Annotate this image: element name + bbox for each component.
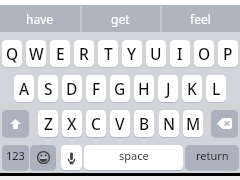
staticText: J (166, 78, 171, 99)
staticText: R (79, 43, 89, 64)
staticText: P (223, 43, 233, 64)
button[interactable]: S (38, 75, 58, 102)
button[interactable]: Q (2, 40, 22, 67)
staticText: Q (6, 43, 19, 64)
button[interactable]: M (183, 110, 203, 137)
button[interactable]: E (50, 40, 70, 67)
staticText: A (19, 78, 30, 99)
staticText: C (91, 113, 101, 134)
staticText: H (138, 78, 150, 99)
button[interactable]: Emoji (30, 145, 56, 170)
button[interactable]: D (62, 75, 82, 102)
button[interactable]: feel (160, 5, 240, 32)
staticText: G (114, 78, 126, 99)
button[interactable]: N (159, 110, 179, 137)
button[interactable]: have (0, 5, 80, 32)
button[interactable]: Y (122, 40, 142, 67)
button[interactable]: Shift (2, 110, 29, 137)
button[interactable]: C (86, 110, 106, 137)
button[interactable]: Dictate (61, 145, 82, 170)
staticText: return (196, 148, 229, 163)
button[interactable]: J (158, 75, 178, 102)
button[interactable]: T (98, 40, 118, 67)
staticText: Z (44, 113, 53, 134)
staticText: I (177, 43, 183, 64)
button[interactable]: F (86, 75, 106, 102)
button[interactable]: U (146, 40, 166, 67)
staticText: O (198, 43, 211, 64)
staticText: M (186, 113, 201, 134)
button[interactable]: V (110, 110, 130, 137)
button[interactable]: R (74, 40, 94, 67)
staticText: W (29, 43, 44, 64)
staticText: X (67, 113, 77, 134)
staticText: E (56, 43, 65, 64)
staticText: space (119, 148, 149, 163)
button[interactable]: space (84, 145, 183, 170)
staticText: feel (190, 11, 211, 27)
button[interactable]: 123 (2, 145, 29, 170)
button[interactable]: X (62, 110, 82, 137)
button[interactable]: L (206, 75, 226, 102)
staticText: have (26, 11, 54, 27)
staticText: U (150, 43, 162, 64)
button[interactable]: P (218, 40, 238, 67)
staticText: L (212, 78, 221, 99)
button[interactable]: O (194, 40, 214, 67)
staticText: Y (127, 43, 137, 64)
button[interactable]: return (185, 145, 239, 170)
staticText: D (66, 78, 78, 99)
button[interactable]: I (170, 40, 190, 67)
button[interactable]: Delete (211, 110, 238, 137)
button[interactable]: B (134, 110, 154, 137)
button[interactable]: A (14, 75, 34, 102)
button[interactable]: K (182, 75, 202, 102)
staticText: F (92, 78, 101, 99)
staticText: 123 (6, 148, 25, 163)
button[interactable]: G (110, 75, 130, 102)
button[interactable]: H (134, 75, 154, 102)
button[interactable]: W (26, 40, 46, 67)
staticText: N (163, 113, 176, 134)
staticText: V (115, 113, 125, 134)
staticText: get (111, 11, 130, 27)
button[interactable]: get (80, 5, 160, 32)
button[interactable]: Z (38, 110, 58, 137)
staticText: S (44, 78, 53, 99)
staticText: K (187, 78, 197, 99)
staticText: T (104, 43, 113, 64)
staticText: B (139, 113, 150, 134)
